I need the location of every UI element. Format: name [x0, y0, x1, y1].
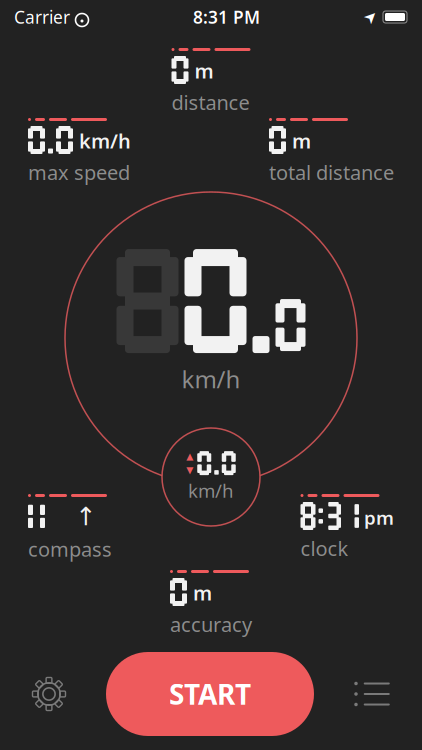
staticText: m — [194, 57, 213, 84]
button[interactable]: START — [106, 652, 314, 736]
staticText: km/h — [181, 363, 240, 395]
staticText: total distance — [269, 159, 394, 186]
button[interactable]: Settings — [20, 665, 78, 723]
staticText: 8:31 PM — [193, 5, 260, 28]
staticText: Carrier — [14, 5, 70, 28]
staticText: ↑ — [75, 502, 96, 531]
button[interactable]: History — [342, 666, 402, 722]
staticText: km/h — [188, 478, 234, 503]
staticText: ▲ — [186, 451, 193, 462]
staticText: max speed — [28, 159, 130, 186]
staticText: compass — [28, 536, 112, 562]
staticText: START — [169, 675, 251, 713]
staticText: m — [193, 579, 212, 606]
staticText: ▼ — [186, 465, 193, 475]
staticText: ➤ — [364, 8, 377, 26]
staticText: m — [292, 127, 311, 154]
staticText: distance — [171, 89, 249, 116]
staticText: accuracy — [170, 611, 252, 638]
staticText: clock — [300, 535, 348, 562]
staticText: km/h — [79, 127, 131, 154]
staticText: pm — [364, 505, 394, 530]
